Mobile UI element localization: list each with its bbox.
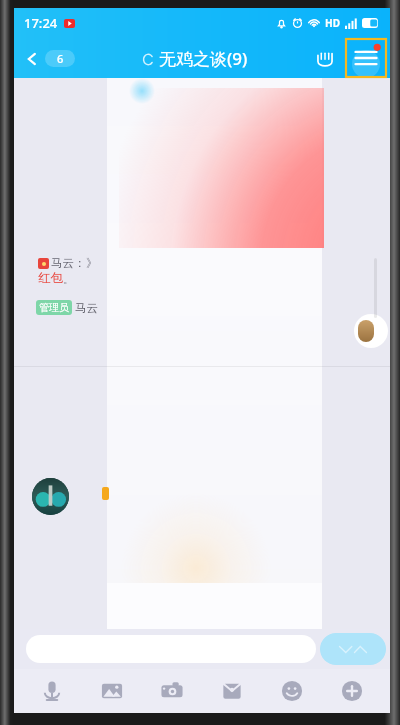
button[interactable]: 管理员 xyxy=(36,300,98,315)
staticText: 马云 xyxy=(75,301,98,315)
staticText: 》 xyxy=(86,256,98,270)
button[interactable]: Voice message xyxy=(30,669,74,713)
staticText: 马云： xyxy=(51,256,86,270)
button[interactable]: More xyxy=(330,669,374,713)
button[interactable]: Send xyxy=(320,633,386,665)
button[interactable]: Photo xyxy=(90,669,134,713)
staticText: 管理员 xyxy=(39,301,69,314)
button[interactable]: Camera xyxy=(150,669,194,713)
button[interactable]: User avatar xyxy=(32,478,69,515)
button[interactable]: Red packet xyxy=(210,669,254,713)
staticText: 。 xyxy=(63,273,73,286)
staticText: 6 xyxy=(57,51,64,66)
button[interactable]: Back xyxy=(14,46,81,71)
button[interactable]: 马云： xyxy=(38,256,98,286)
staticText: HD xyxy=(325,16,340,30)
button[interactable]: Avatar xyxy=(354,314,388,348)
button[interactable]: Group members xyxy=(308,41,342,75)
staticText: 红包 xyxy=(38,270,63,286)
staticText: 无鸡之谈(9) xyxy=(159,47,248,70)
button[interactable]: Emoji xyxy=(270,669,314,713)
button[interactable]: Menu xyxy=(346,39,386,77)
staticText: 17:24 xyxy=(24,14,58,32)
